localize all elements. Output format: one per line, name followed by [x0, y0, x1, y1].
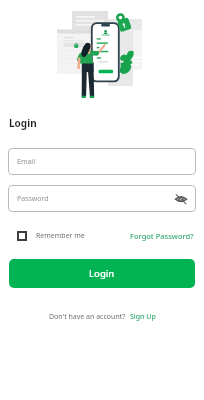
button[interactable]: Remember me [17, 231, 85, 241]
button[interactable]: Password [8, 185, 196, 212]
staticText: Login [89, 267, 115, 280]
button[interactable]: Email [8, 148, 196, 175]
staticText: Remember me [36, 231, 85, 241]
staticText: Login [9, 116, 37, 130]
button[interactable]: Login [9, 259, 195, 288]
button[interactable]: Forgot Password? [130, 231, 194, 241]
staticText: Email [17, 157, 35, 167]
button[interactable]: Sign Up [130, 312, 156, 322]
staticText: Password [17, 194, 49, 204]
button[interactable]: Show password [173, 191, 189, 207]
staticText: Don't have an account? [49, 312, 126, 322]
